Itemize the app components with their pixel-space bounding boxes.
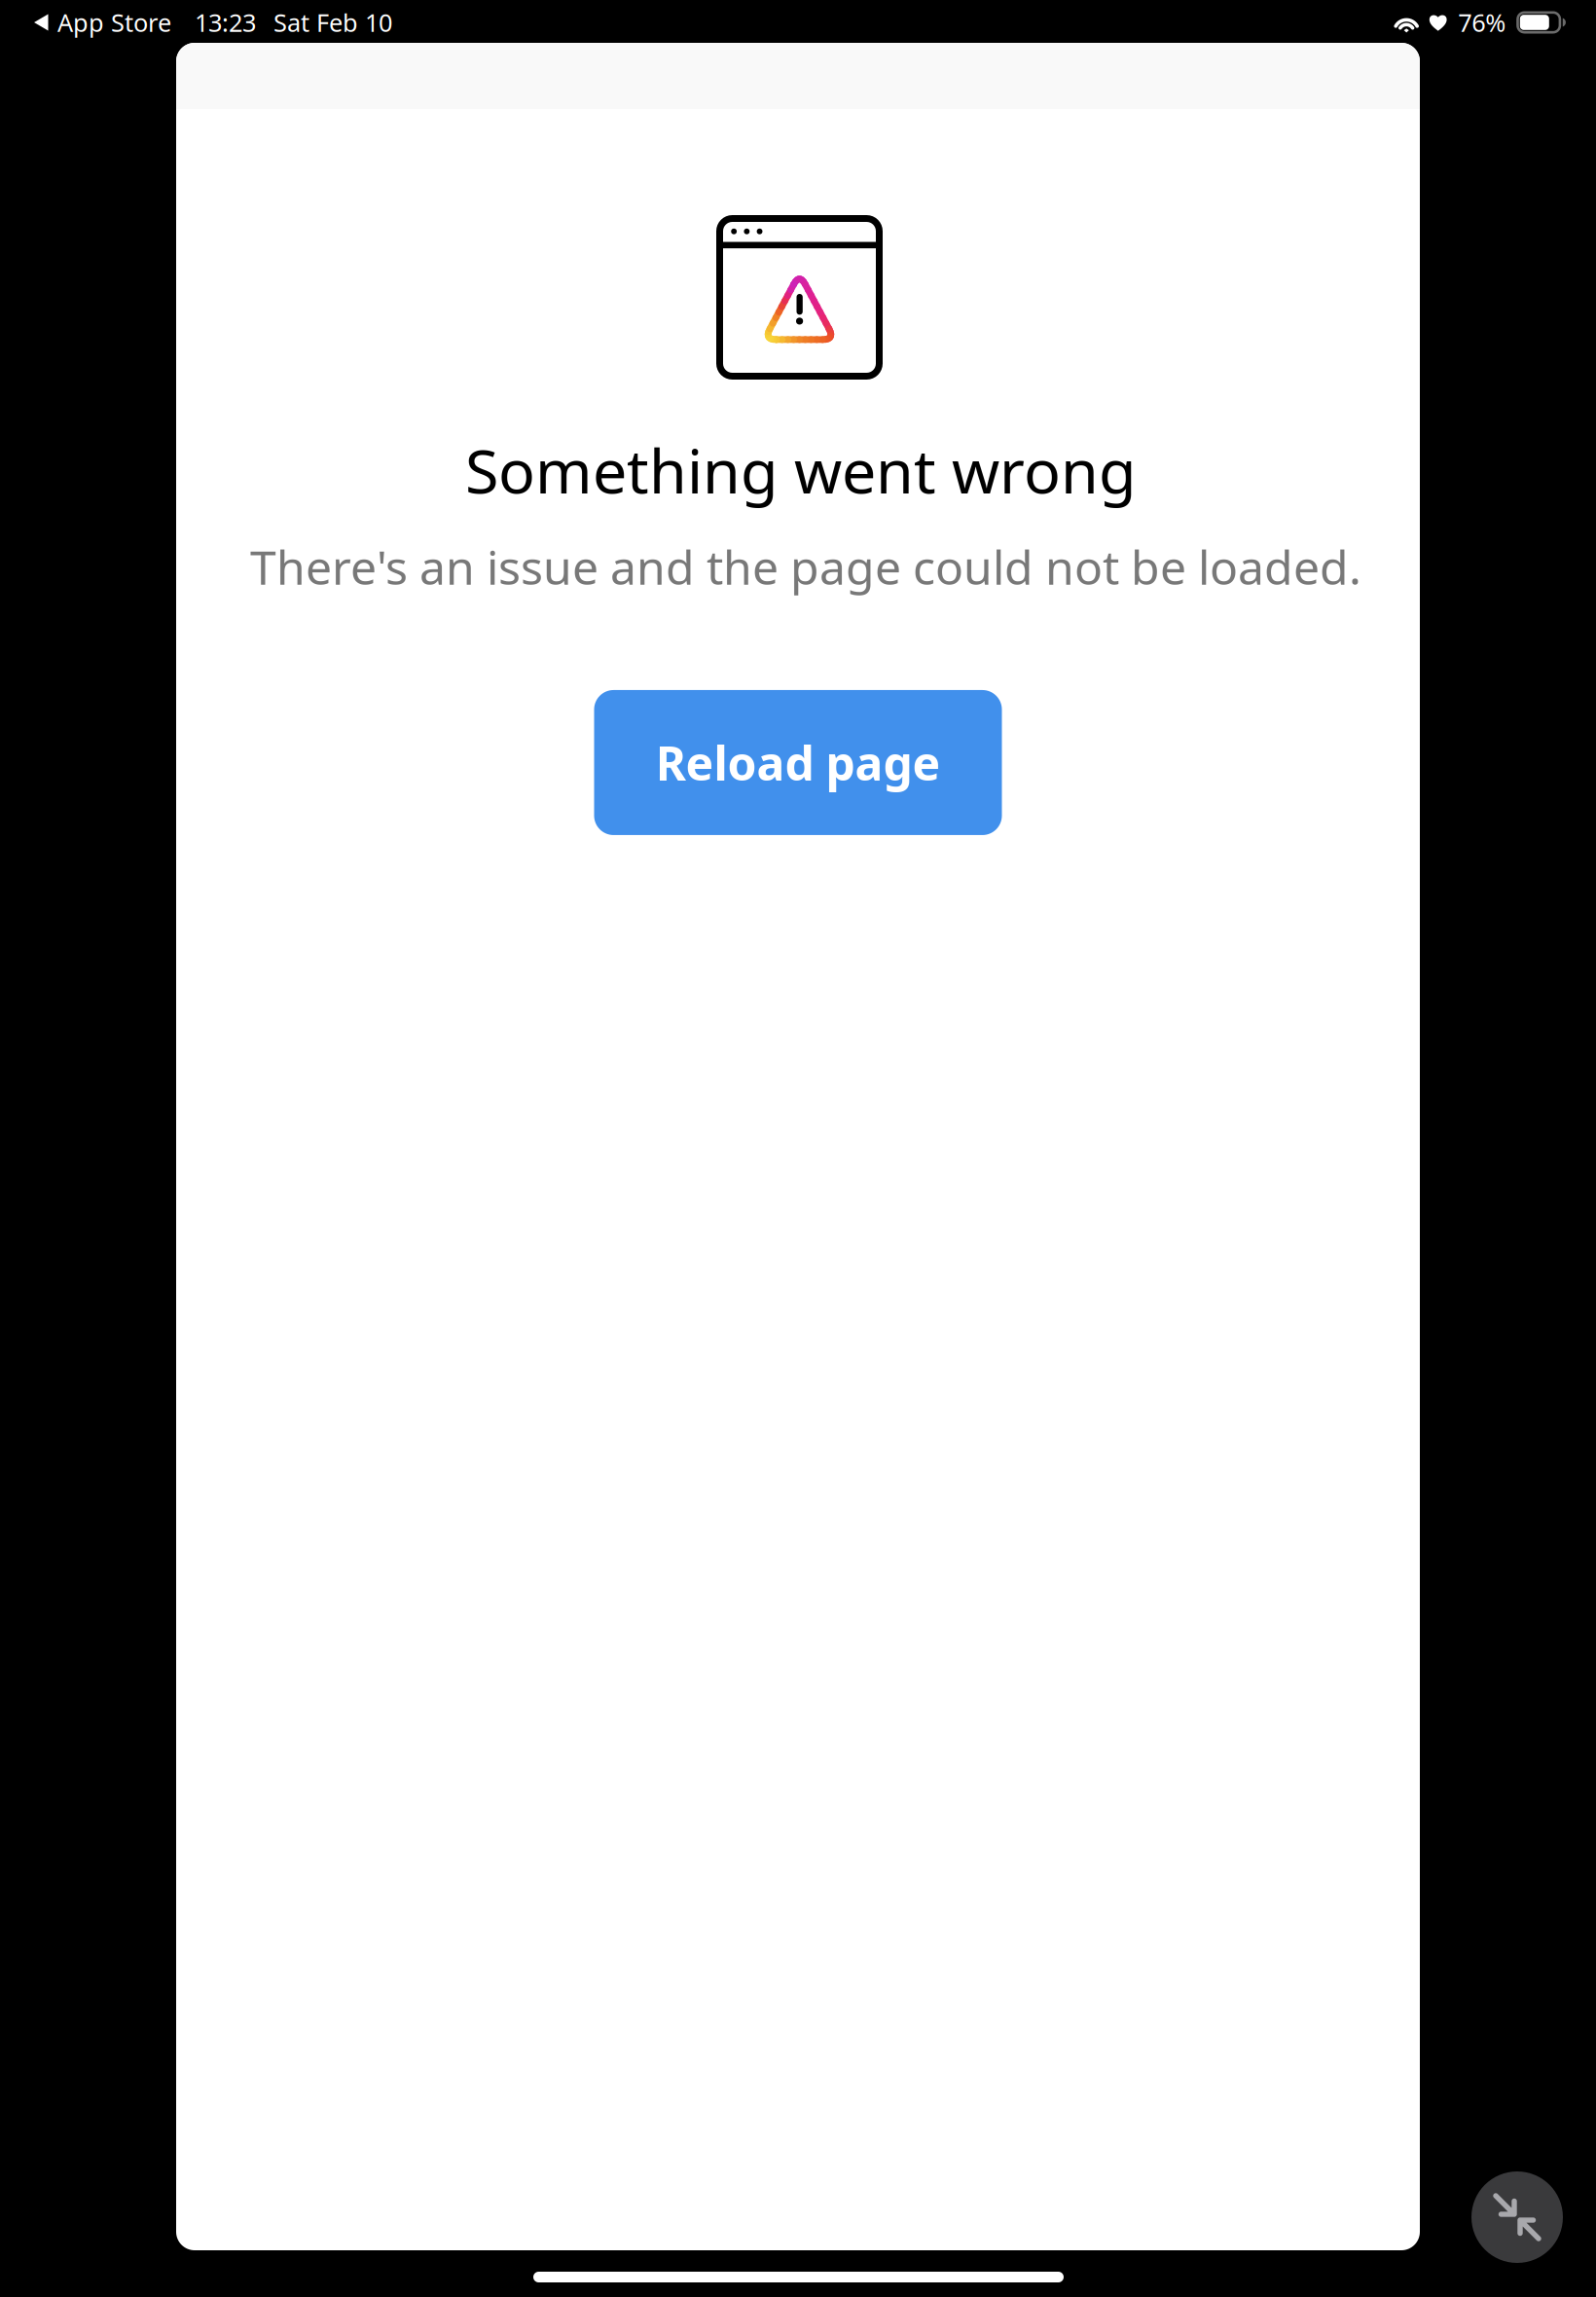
button[interactable]: Reload page — [594, 690, 1002, 835]
staticText: There's an issue and the page could not … — [250, 536, 1361, 598]
staticText: 13:23 — [195, 6, 256, 39]
staticText: Reload page — [655, 732, 941, 794]
staticText: 76% — [1458, 6, 1506, 39]
staticText: Sat Feb 10 — [273, 6, 392, 39]
button[interactable]: Back to App Store — [0, 0, 179, 45]
staticText: Something went wrong — [465, 429, 1137, 510]
button[interactable]: Resize window — [1471, 2171, 1563, 2263]
staticText: App Store — [57, 6, 171, 39]
